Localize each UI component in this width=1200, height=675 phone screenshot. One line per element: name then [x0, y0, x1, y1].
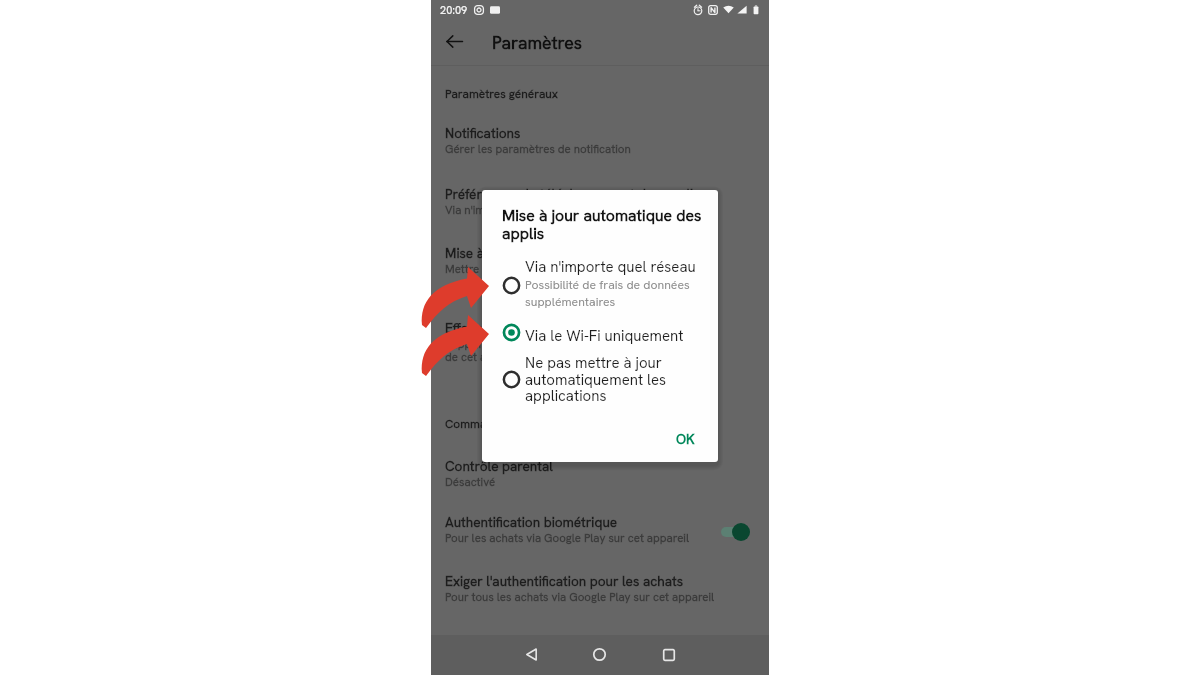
staticText: Effacer l'historique de recherche: [445, 319, 642, 337]
staticText: Pour les achats via Google Play sur cet …: [445, 530, 689, 545]
staticText: 20:09: [440, 3, 468, 17]
button[interactable]: OK: [668, 426, 703, 452]
staticText: Préférences de téléchargement des applis: [445, 185, 700, 203]
button[interactable]: Authentification biométrique: [431, 510, 769, 554]
staticText: Mise à jour automatique des applis: [502, 205, 702, 244]
staticText: Mise à jour automatique des applis: [445, 244, 657, 262]
staticText: Gérer les paramètres de notification: [445, 141, 631, 156]
staticText: Commandes utilisateur: [445, 416, 568, 432]
staticText: Exiger l'authentification pour les achat…: [445, 572, 684, 590]
staticText: Via n'importe quel réseau: [525, 257, 696, 277]
button[interactable]: Notifications: [431, 121, 769, 165]
button[interactable]: Applications récentes: [655, 641, 682, 668]
button[interactable]: Retour: [439, 26, 469, 56]
staticText: Paramètres: [492, 31, 582, 54]
staticText: Supprimer les recherches effectuées à pa…: [445, 336, 674, 365]
staticText: Authentification biométrique: [445, 513, 618, 531]
staticText: Paramètres généraux: [445, 86, 558, 102]
staticText: Pour tous les achats via Google Play sur…: [445, 589, 715, 604]
staticText: Possibilité de frais de données suppléme…: [525, 277, 690, 309]
button[interactable]: Via n'importe quel réseau: [482, 257, 718, 311]
staticText: Mettre à jour les applis via le Wi-Fi: [445, 261, 623, 276]
button[interactable]: Ne pas mettre à jour automatiquement les…: [482, 353, 718, 409]
button[interactable]: Activer l'authentification biométrique: [721, 522, 750, 541]
button[interactable]: Contrôle parental: [431, 454, 769, 498]
button[interactable]: Mise à jour automatique des applis: [431, 241, 769, 285]
button[interactable]: Exiger l'authentification pour les achat…: [431, 569, 769, 613]
staticText: OK: [676, 430, 695, 448]
button[interactable]: Retour: [518, 641, 545, 668]
button[interactable]: Accueil: [586, 641, 613, 668]
staticText: Contrôle parental: [445, 457, 553, 475]
button[interactable]: Via le Wi-Fi uniquement: [482, 326, 718, 352]
staticText: Via n'importe quel réseau: [445, 202, 576, 217]
button[interactable]: Effacer l'historique de recherche: [431, 316, 769, 372]
staticText: Via le Wi-Fi uniquement: [525, 326, 684, 346]
button[interactable]: Préférences de téléchargement des applis: [431, 182, 769, 226]
staticText: Ne pas mettre à jour automatiquement les…: [525, 353, 667, 405]
staticText: Désactivé: [445, 474, 496, 489]
staticText: Notifications: [445, 124, 521, 142]
